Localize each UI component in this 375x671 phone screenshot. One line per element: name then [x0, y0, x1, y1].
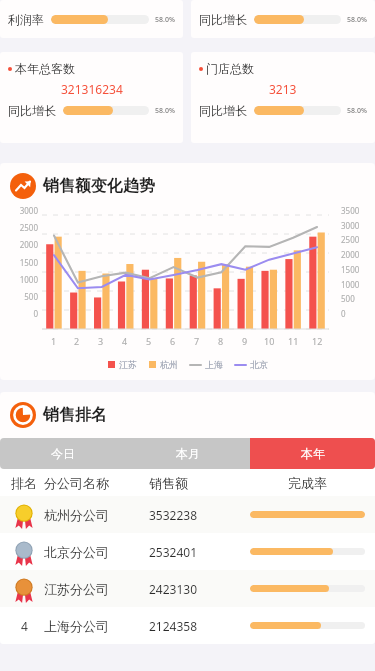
staticText: 2423130	[149, 581, 198, 597]
staticText: 同比增长	[199, 103, 247, 118]
button[interactable]: 北京分公司	[0, 533, 375, 570]
staticText: 本年	[301, 446, 325, 461]
staticText: 江苏分公司	[44, 581, 109, 597]
staticText: 321316234	[61, 81, 123, 97]
staticText: 2000	[341, 249, 371, 260]
staticText: 12	[312, 335, 323, 347]
button[interactable]: 销售排名	[0, 392, 375, 438]
staticText: 分公司名称	[44, 475, 109, 491]
staticText: 3532238	[149, 507, 198, 523]
staticText: 3	[98, 335, 104, 347]
staticText: 9	[242, 335, 248, 347]
staticText: 北京	[250, 359, 268, 370]
staticText: 7	[194, 335, 200, 347]
staticText: 江苏	[119, 359, 137, 370]
staticText: 1000	[4, 274, 38, 285]
staticText: 同比增长	[199, 12, 247, 27]
staticText: 利润率	[8, 12, 44, 27]
staticText: 2000	[4, 239, 38, 250]
staticText: 销售排名	[43, 405, 107, 425]
staticText: 10	[264, 335, 275, 347]
staticText: 500	[4, 291, 38, 302]
staticText: 6	[170, 335, 176, 347]
button[interactable]: 4	[0, 607, 375, 644]
staticText: 2	[74, 335, 80, 347]
staticText: 1000	[341, 279, 371, 290]
staticText: 5	[146, 335, 152, 347]
button[interactable]: 今日	[0, 438, 125, 469]
button[interactable]: 本年总客数	[0, 52, 183, 143]
staticText: 销售额变化趋势	[43, 176, 155, 196]
button[interactable]: 销售额变化趋势	[0, 173, 375, 199]
staticText: 58.0%	[347, 106, 367, 116]
other: 销售额变化趋势	[10, 173, 36, 199]
other: 销售排名	[10, 402, 36, 428]
staticText: 2500	[4, 222, 38, 233]
staticText: 杭州分公司	[44, 507, 109, 523]
staticText: 0	[4, 308, 38, 319]
staticText: 完成率	[288, 475, 327, 491]
button[interactable]: 同比增长	[191, 0, 375, 38]
staticText: 2124358	[149, 618, 198, 634]
staticText: 58.0%	[155, 15, 175, 25]
staticText: 4	[21, 618, 28, 634]
staticText: 0	[341, 308, 371, 319]
staticText: 销售额	[149, 475, 188, 491]
staticText: 58.0%	[155, 106, 175, 116]
staticText: 门店总数	[206, 61, 254, 76]
staticText: 北京分公司	[44, 544, 109, 560]
staticText: 8	[218, 335, 224, 347]
staticText: 本年总客数	[15, 61, 75, 76]
staticText: 2532401	[149, 544, 198, 560]
button[interactable]: 门店总数	[191, 52, 375, 143]
staticText: 11	[288, 335, 299, 347]
staticText: 1	[51, 335, 57, 347]
button[interactable]: 本年	[250, 438, 375, 469]
staticText: 2500	[341, 234, 371, 245]
button[interactable]: 利润率	[0, 0, 183, 38]
staticText: 4	[122, 335, 128, 347]
staticText: 58.0%	[347, 15, 367, 25]
staticText: 1500	[4, 257, 38, 268]
staticText: 1500	[341, 264, 371, 275]
button[interactable]: 江苏分公司	[0, 570, 375, 607]
staticText: 排名	[11, 475, 37, 491]
staticText: 本月	[176, 446, 200, 461]
button[interactable]: 杭州分公司	[0, 496, 375, 533]
staticText: 3000	[341, 220, 371, 231]
button[interactable]: 本月	[125, 438, 250, 469]
staticText: 上海	[205, 359, 223, 370]
staticText: 今日	[51, 446, 75, 461]
staticText: 3500	[341, 205, 371, 216]
staticText: 上海分公司	[44, 618, 109, 634]
staticText: 杭州	[160, 359, 178, 370]
staticText: 3000	[4, 205, 38, 216]
staticText: 3213	[269, 81, 297, 97]
staticText: 同比增长	[8, 103, 56, 118]
staticText: 500	[341, 293, 371, 304]
